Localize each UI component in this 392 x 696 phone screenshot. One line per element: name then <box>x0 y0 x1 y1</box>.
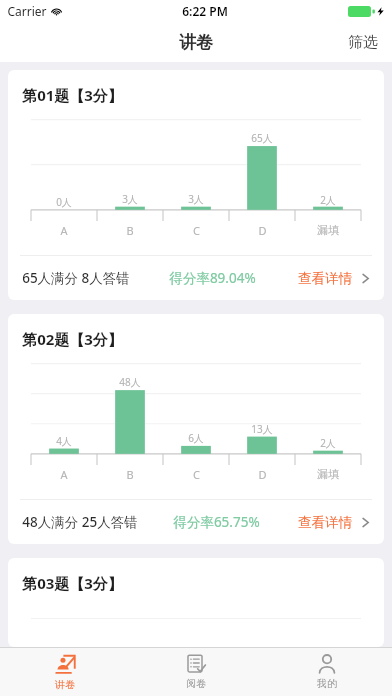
button[interactable]: 第03题【3分】 <box>8 558 384 647</box>
staticText: 漏填 <box>317 467 339 481</box>
staticText: Carrier <box>7 3 47 19</box>
staticText: 6人 <box>188 431 204 445</box>
staticText: 6:22 PM <box>182 3 228 19</box>
staticText: B <box>126 467 134 482</box>
staticText: 第03题【3分】 <box>22 573 123 593</box>
staticText: 48人满分 25人答错 <box>22 513 138 531</box>
staticText: A <box>60 467 68 482</box>
staticText: C <box>193 467 200 482</box>
staticText: 3人 <box>122 192 138 206</box>
staticText: 得分率89.04% <box>169 269 256 287</box>
staticText: 65人满分 8人答错 <box>22 269 130 287</box>
staticText: 0人 <box>56 195 72 209</box>
staticText: 得分率65.75% <box>173 513 260 531</box>
staticText: A <box>60 223 68 238</box>
staticText: 48人 <box>119 375 141 389</box>
staticText: 第02题【3分】 <box>22 329 123 349</box>
staticText: 2人 <box>320 193 336 207</box>
other: 我的 <box>317 654 337 674</box>
staticText: 13人 <box>251 422 273 436</box>
other: 阅卷 <box>186 654 206 674</box>
button[interactable]: 筛选 <box>334 24 392 61</box>
staticText: 第01题【3分】 <box>22 85 123 105</box>
other: 讲卷 <box>55 654 76 675</box>
staticText: 我的 <box>317 677 337 690</box>
staticText: 讲卷 <box>55 678 75 691</box>
staticText: D <box>258 467 267 482</box>
staticText: D <box>258 223 267 238</box>
staticText: C <box>193 223 200 238</box>
button[interactable]: 讲卷 <box>0 648 130 696</box>
staticText: 4人 <box>56 434 72 448</box>
staticText: B <box>126 223 134 238</box>
staticText: 讲卷 <box>179 32 213 53</box>
button[interactable]: 第02题【3分】 <box>8 314 384 544</box>
staticText: 查看详情 <box>298 270 352 287</box>
button[interactable]: 阅卷 <box>130 648 261 696</box>
staticText: 漏填 <box>317 223 339 237</box>
staticText: 阅卷 <box>186 677 206 690</box>
button[interactable]: 第01题【3分】 <box>8 70 384 300</box>
staticText: 查看详情 <box>298 514 352 531</box>
staticText: 65人 <box>251 131 273 145</box>
staticText: 3人 <box>188 192 204 206</box>
staticText: 2人 <box>320 436 336 450</box>
staticText: 筛选 <box>348 33 378 52</box>
button[interactable]: 我的 <box>261 648 392 696</box>
